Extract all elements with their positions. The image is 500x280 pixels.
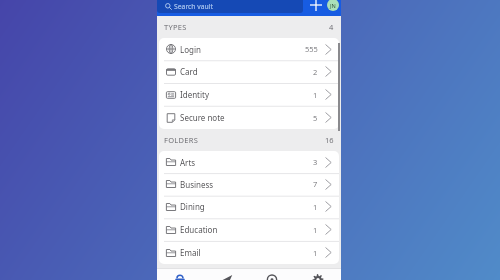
button[interactable]: Send bbox=[203, 269, 249, 280]
button[interactable]: Education bbox=[159, 218, 339, 241]
button[interactable]: Arts bbox=[159, 151, 339, 173]
staticText: 5 bbox=[313, 113, 318, 123]
button[interactable]: Add item bbox=[308, 0, 324, 13]
staticText: 1 bbox=[313, 225, 318, 235]
staticText: Login bbox=[180, 44, 201, 55]
button[interactable]: Generator bbox=[249, 269, 295, 280]
button[interactable]: Business bbox=[159, 173, 339, 195]
staticText: 7 bbox=[313, 179, 318, 189]
button[interactable]: Search vault bbox=[157, 0, 303, 13]
button[interactable]: Login bbox=[159, 38, 339, 60]
button[interactable]: Identity bbox=[159, 83, 339, 106]
button[interactable]: Dining bbox=[159, 195, 339, 218]
staticText: FOLDERS bbox=[164, 135, 199, 145]
staticText: 4 bbox=[329, 22, 334, 32]
button[interactable]: Secure note bbox=[159, 106, 339, 129]
button[interactable]: Email bbox=[159, 241, 339, 264]
staticText: Card bbox=[180, 66, 198, 77]
staticText: Education bbox=[180, 224, 218, 235]
staticText: 555 bbox=[305, 44, 318, 54]
button[interactable]: My vault bbox=[157, 269, 203, 280]
staticText: 3 bbox=[313, 157, 318, 167]
staticText: 16 bbox=[325, 135, 334, 145]
staticText: TYPES bbox=[164, 22, 187, 32]
staticText: Arts bbox=[180, 157, 196, 168]
staticText: Email bbox=[180, 247, 201, 258]
staticText: JN bbox=[330, 2, 336, 9]
staticText: Secure note bbox=[180, 112, 225, 123]
staticText: Business bbox=[180, 179, 214, 190]
staticText: 1 bbox=[313, 90, 318, 100]
staticText: Dining bbox=[180, 201, 205, 212]
staticText: 1 bbox=[313, 248, 318, 258]
button[interactable]: Card bbox=[159, 60, 339, 83]
staticText: Search vault bbox=[174, 2, 213, 11]
staticText: 2 bbox=[313, 67, 318, 77]
button[interactable]: Account bbox=[325, 0, 341, 13]
button[interactable]: Settings bbox=[295, 269, 341, 280]
staticText: 1 bbox=[313, 202, 318, 212]
staticText: Identity bbox=[180, 89, 210, 100]
